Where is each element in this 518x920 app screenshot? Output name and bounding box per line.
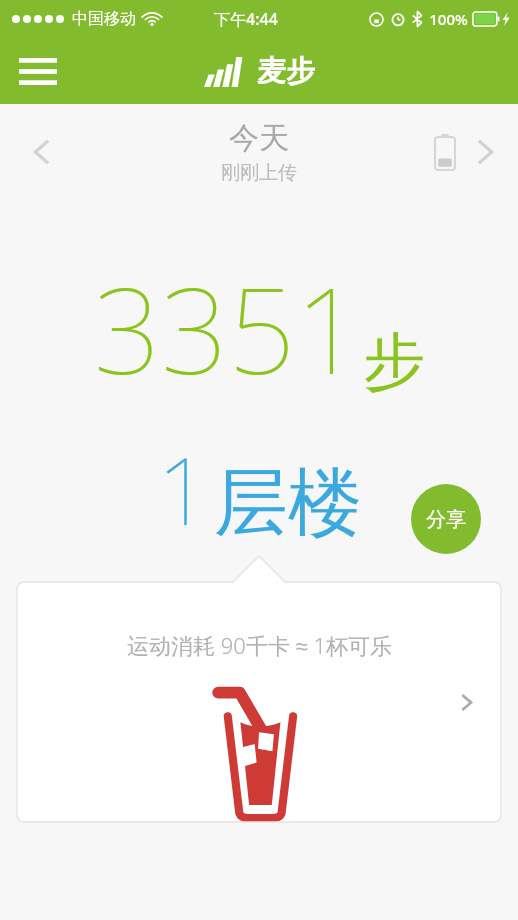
button[interactable]: 运动消耗 90千卡 ≈ 1杯可乐: [17, 582, 501, 822]
staticText: 中国移动: [72, 9, 136, 29]
staticText: 1: [157, 427, 210, 552]
staticText: 步: [363, 323, 425, 401]
staticText: 麦步: [257, 53, 315, 90]
button[interactable]: Next day: [464, 122, 506, 182]
button[interactable]: Menu: [8, 45, 68, 97]
staticText: 刚刚上传: [221, 161, 297, 185]
button[interactable]: 分享: [411, 484, 481, 554]
staticText: 层楼: [214, 457, 362, 550]
button[interactable]: Previous day: [14, 119, 70, 185]
staticText: 3351: [93, 248, 363, 409]
staticText: 100%: [429, 9, 468, 29]
staticText: 分享: [426, 507, 466, 532]
staticText: 今天: [229, 119, 289, 157]
staticText: 下午4:44: [214, 8, 278, 30]
staticText: 运动消耗 90千卡 ≈ 1杯可乐: [127, 630, 392, 660]
